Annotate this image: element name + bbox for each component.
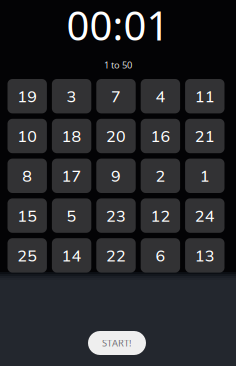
button[interactable]: 18 <box>52 119 91 153</box>
button[interactable]: 14 <box>52 238 91 273</box>
staticText: 4 <box>155 86 165 106</box>
button[interactable]: 7 <box>96 79 136 113</box>
button[interactable]: 4 <box>141 79 180 113</box>
button[interactable]: 2 <box>141 159 180 193</box>
staticText: 15 <box>17 206 37 226</box>
staticText: 25 <box>17 245 37 265</box>
staticText: 22 <box>106 245 126 265</box>
button[interactable]: 25 <box>7 238 47 273</box>
staticText: 8 <box>22 166 32 186</box>
staticText: 2 <box>155 166 165 186</box>
button[interactable]: 19 <box>7 79 47 113</box>
button[interactable]: 8 <box>7 159 47 193</box>
staticText: 19 <box>17 86 37 106</box>
button[interactable]: 15 <box>7 198 47 233</box>
staticText: 6 <box>155 245 165 265</box>
button[interactable]: 3 <box>52 79 91 113</box>
staticText: 1 to 50 <box>104 59 132 71</box>
button[interactable]: 13 <box>185 238 224 273</box>
button[interactable]: 6 <box>141 238 180 273</box>
button[interactable]: 5 <box>52 198 91 233</box>
staticText: 21 <box>195 126 215 146</box>
button[interactable]: 24 <box>185 198 224 233</box>
staticText: 3 <box>67 86 77 106</box>
staticText: 5 <box>67 206 77 226</box>
button[interactable]: 10 <box>7 119 47 153</box>
button[interactable]: 21 <box>185 119 224 153</box>
staticText: 10 <box>17 126 37 146</box>
button[interactable]: 17 <box>52 159 91 193</box>
button[interactable]: 1 <box>185 159 224 193</box>
staticText: START! <box>102 337 132 349</box>
button[interactable]: 12 <box>141 198 180 233</box>
staticText: 23 <box>106 206 126 226</box>
staticText: 16 <box>150 126 170 146</box>
button[interactable]: 16 <box>141 119 180 153</box>
staticText: 00:01 <box>66 0 169 52</box>
staticText: 7 <box>111 86 121 106</box>
button[interactable]: 11 <box>185 79 224 113</box>
staticText: 18 <box>62 126 82 146</box>
button[interactable]: 20 <box>96 119 136 153</box>
staticText: 20 <box>106 126 126 146</box>
staticText: 11 <box>195 86 215 106</box>
staticText: 9 <box>111 166 121 186</box>
staticText: 13 <box>195 245 215 265</box>
staticText: 12 <box>150 206 170 226</box>
staticText: 17 <box>62 166 82 186</box>
button[interactable]: START! <box>88 331 146 355</box>
button[interactable]: 23 <box>96 198 136 233</box>
staticText: 24 <box>195 206 215 226</box>
button[interactable]: 22 <box>96 238 136 273</box>
staticText: 14 <box>62 245 82 265</box>
button[interactable]: 9 <box>96 159 136 193</box>
staticText: 1 <box>200 166 210 186</box>
